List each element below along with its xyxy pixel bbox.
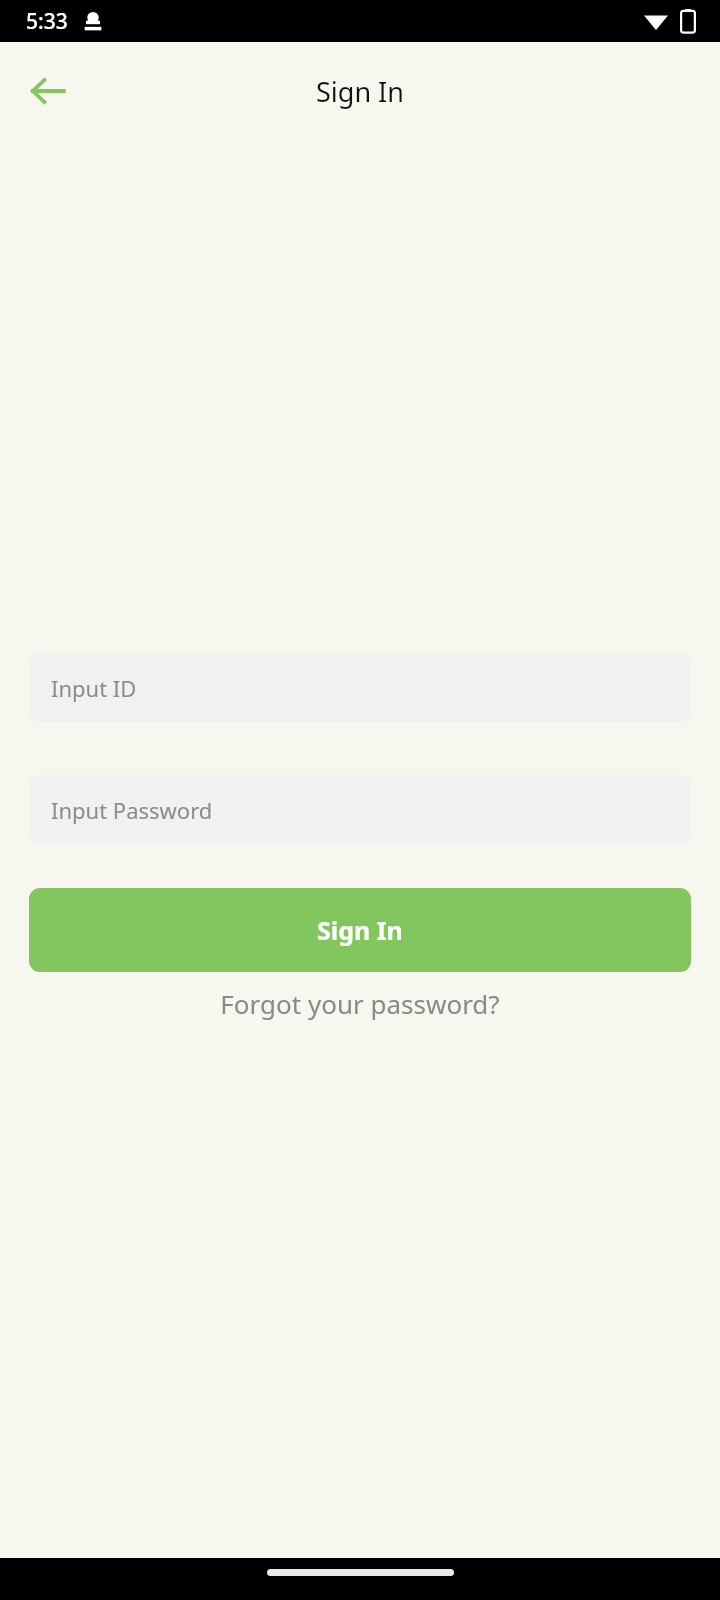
- staticText: Sign In: [316, 73, 404, 110]
- staticText: Input Password: [51, 795, 213, 825]
- button[interactable]: Input ID: [29, 653, 691, 722]
- staticText: Forgot your password?: [220, 986, 500, 1021]
- button[interactable]: Sign In: [29, 888, 691, 972]
- button[interactable]: Back: [14, 57, 82, 125]
- button[interactable]: Input Password: [29, 775, 691, 844]
- staticText: Sign In: [317, 913, 403, 947]
- button[interactable]: Forgot your password?: [0, 972, 720, 1034]
- staticText: 5:33: [26, 7, 68, 36]
- staticText: Input ID: [51, 673, 137, 703]
